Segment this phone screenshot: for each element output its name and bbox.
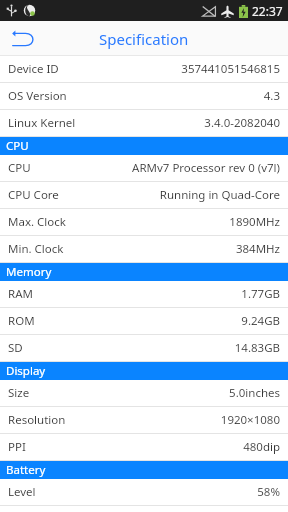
staticText: Running in Quad-Core (67, 187, 280, 203)
staticText: 5.0inches (38, 385, 280, 401)
staticText: Display (6, 363, 46, 379)
button[interactable]: SD (0, 335, 288, 362)
button[interactable]: Device ID (0, 56, 288, 83)
button[interactable]: Battery (0, 461, 288, 479)
button[interactable]: OS Version (0, 83, 288, 110)
staticText: OS Version (8, 88, 67, 104)
staticText: 480dip (34, 439, 280, 455)
staticText: 4.3 (75, 88, 280, 104)
staticText: Specification (99, 29, 189, 49)
staticText: CPU Core (8, 187, 59, 203)
button[interactable]: Back (4, 23, 42, 55)
button[interactable]: Level (0, 479, 288, 506)
button[interactable]: Memory (0, 263, 288, 281)
button[interactable]: Display (0, 362, 288, 380)
button[interactable]: CPU (0, 137, 288, 155)
staticText: Linux Kernel (8, 115, 76, 131)
staticText: 1.77GB (41, 286, 280, 302)
button[interactable]: CPU (0, 155, 288, 182)
staticText: SD (8, 340, 23, 356)
button[interactable]: Resolution (0, 407, 288, 434)
button[interactable]: Linux Kernel (0, 110, 288, 137)
staticText: Size (8, 385, 30, 401)
staticText: Resolution (8, 412, 66, 428)
staticText: CPU (8, 160, 31, 176)
staticText: Memory (6, 264, 52, 280)
button[interactable]: Size (0, 380, 288, 407)
staticText: Device ID (8, 61, 59, 77)
button[interactable]: CPU Core (0, 182, 288, 209)
staticText: Battery (6, 462, 46, 478)
staticText: 3.4.0-2082040 (84, 115, 280, 131)
staticText: PPI (8, 439, 26, 455)
staticText: CPU (6, 138, 29, 154)
button[interactable]: PPI (0, 434, 288, 461)
staticText: 14.83GB (31, 340, 280, 356)
staticText: 384MHz (72, 241, 280, 257)
staticText: Level (8, 484, 36, 500)
staticText: ROM (8, 313, 35, 329)
staticText: 58% (44, 484, 280, 500)
staticText: 9.24GB (43, 313, 280, 329)
button[interactable]: RAM (0, 281, 288, 308)
staticText: 1890MHz (74, 214, 280, 230)
staticText: 357441051546815 (67, 61, 280, 77)
staticText: RAM (8, 286, 33, 302)
staticText: Min. Clock (8, 241, 64, 257)
button[interactable]: Min. Clock (0, 236, 288, 263)
staticText: ARMv7 Processor rev 0 (v7l) (39, 160, 280, 176)
staticText: Max. Clock (8, 214, 66, 230)
button[interactable]: ROM (0, 308, 288, 335)
staticText: 22:37 (252, 3, 283, 19)
staticText: 1920×1080 (74, 412, 280, 428)
button[interactable]: Max. Clock (0, 209, 288, 236)
